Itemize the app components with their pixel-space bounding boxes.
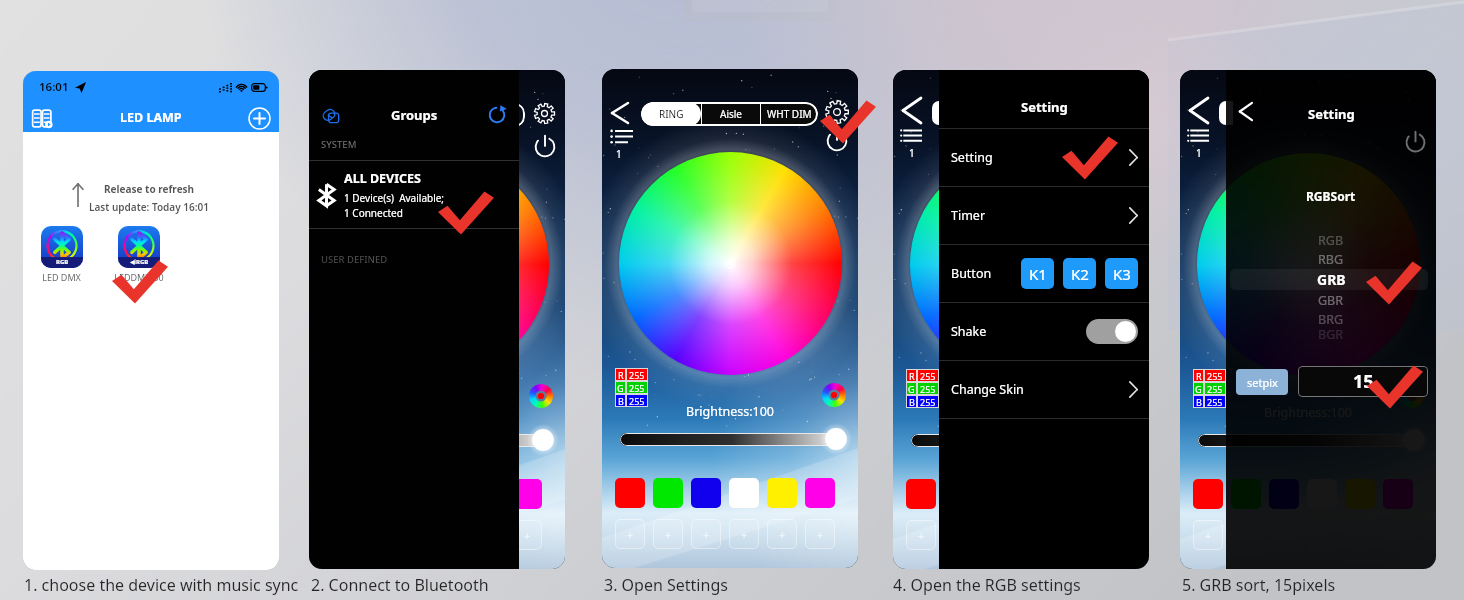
button[interactable]: Colour picker [1113,384,1137,408]
staticText: RGB [56,258,69,266]
button[interactable] [805,478,835,508]
button[interactable]: Add preset [805,519,835,549]
button[interactable]: Add preset [512,520,542,550]
staticText: 255 [920,370,936,382]
staticText: Setting [951,149,993,166]
button[interactable] [512,479,542,509]
button[interactable]: Add preset [906,520,936,550]
button[interactable]: Add preset [729,519,759,549]
button[interactable]: WHT DIM [761,102,818,126]
button[interactable]: Setting [939,129,1149,186]
button[interactable]: Add preset [691,519,721,549]
button[interactable] [615,478,645,508]
button[interactable]: Settings [533,102,556,125]
button[interactable]: RGB [29,226,94,283]
button[interactable]: Back [1189,97,1208,124]
button[interactable]: Colour picker [822,383,846,407]
button[interactable]: K3 [1105,258,1138,289]
button[interactable]: RING [641,102,701,126]
button[interactable] [1345,479,1375,509]
button[interactable] [906,479,936,509]
button[interactable]: Colour picker [1400,384,1424,408]
button[interactable] [327,434,552,447]
button[interactable]: Back [902,97,921,124]
button[interactable]: Add device [246,105,272,131]
button[interactable]: setpix [1236,369,1288,395]
staticText: Brightness:100 [686,403,774,420]
button[interactable]: Power [532,134,558,160]
button[interactable]: K1 [1021,258,1054,289]
button[interactable]: ALL DEVICES [309,161,519,228]
button[interactable]: Add preset [615,519,645,549]
button[interactable]: Back [611,102,628,124]
staticText: 4. Open the RGB settings [893,574,1081,596]
staticText: + [779,527,786,542]
staticText: + [703,527,710,542]
button[interactable] [691,478,721,508]
staticText: + [665,527,672,542]
button[interactable]: Button [939,245,1149,302]
button[interactable] [1198,434,1423,447]
button[interactable]: K2 [1063,258,1096,289]
button[interactable]: ◀⦙RGB [106,226,171,283]
staticText: 255 [1207,370,1223,382]
button[interactable]: Timer [939,187,1149,244]
button[interactable]: Refresh [486,104,508,126]
button[interactable] [729,478,759,508]
button[interactable]: Settings [824,99,850,125]
button[interactable]: Power [824,128,850,154]
staticText: GRB [1317,270,1346,289]
button[interactable] [911,434,1136,447]
button[interactable]: Add preset [767,519,797,549]
button[interactable] [1193,479,1223,509]
button[interactable]: 15 [1298,366,1428,397]
staticText: Brightness:100 [977,404,1065,421]
button[interactable] [767,478,797,508]
button[interactable]: Power [1403,130,1428,155]
button[interactable]: Aisle [702,102,760,126]
button[interactable] [620,433,845,446]
button[interactable] [653,478,683,508]
button[interactable]: Library [28,104,56,132]
button[interactable]: Shake toggle [1086,319,1138,344]
staticText: 255 [920,383,936,395]
button[interactable]: Back [1239,102,1252,121]
button[interactable]: Change Skin [939,361,1149,418]
button[interactable]: Colour picker [529,384,553,408]
button[interactable]: Shake [939,303,1149,360]
staticText: 255 [1207,383,1223,395]
button[interactable]: Add preset [1193,520,1223,550]
button[interactable]: Groups [319,103,343,127]
button[interactable]: Add preset [653,519,683,549]
